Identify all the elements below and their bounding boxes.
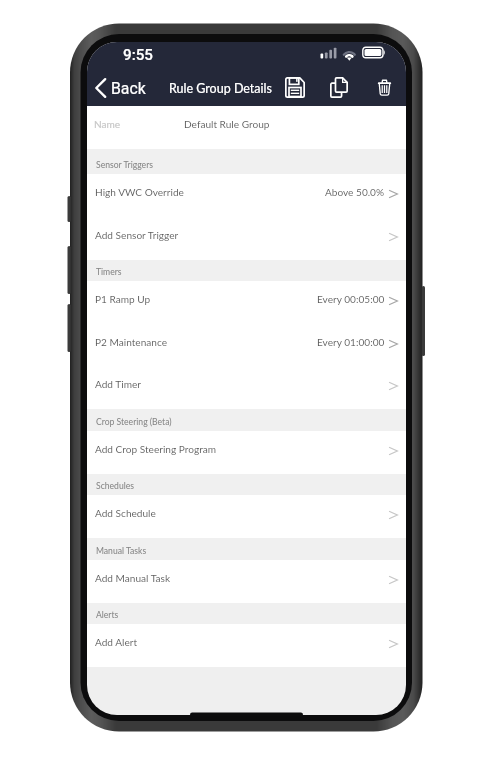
button[interactable]: Add Crop Steering Program <box>87 431 406 474</box>
staticText: Timers <box>96 267 122 277</box>
staticText: Every 00:05:00 <box>317 293 385 305</box>
button[interactable]: Save <box>280 72 310 102</box>
staticText: Above 50.0% <box>325 186 385 198</box>
button[interactable]: High VWC Override <box>87 174 406 217</box>
staticText: High VWC Override <box>95 186 325 198</box>
button[interactable]: Duplicate <box>324 72 354 102</box>
button[interactable]: Add Schedule <box>87 495 406 538</box>
staticText: Add Timer <box>95 378 385 390</box>
staticText: Add Alert <box>95 636 385 648</box>
staticText: P2 Maintenance <box>95 336 317 348</box>
staticText: Sensor Triggers <box>96 160 153 170</box>
button[interactable]: Add Manual Task <box>87 560 406 603</box>
staticText: Schedules <box>96 481 134 491</box>
button[interactable]: Delete <box>369 72 399 102</box>
staticText: P1 Ramp Up <box>95 293 317 305</box>
staticText: Rule Group Details <box>169 81 272 96</box>
button[interactable]: Back <box>91 75 150 101</box>
button[interactable]: P2 Maintenance <box>87 324 406 367</box>
staticText: Back <box>111 79 146 98</box>
staticText: Alerts <box>96 610 119 620</box>
staticText: Crop Steering (Beta) <box>96 417 172 427</box>
staticText: 9:55 <box>123 46 153 64</box>
button[interactable]: Add Timer <box>87 367 406 409</box>
staticText: Manual Tasks <box>96 546 147 556</box>
button[interactable]: Add Alert <box>87 624 406 667</box>
button[interactable]: Name <box>87 106 406 149</box>
staticText: Add Sensor Trigger <box>95 229 385 241</box>
staticText: Add Crop Steering Program <box>95 443 385 455</box>
staticText: Add Schedule <box>95 507 385 519</box>
staticText: Name <box>94 118 121 130</box>
button[interactable]: Add Sensor Trigger <box>87 217 406 260</box>
staticText: Add Manual Task <box>95 572 385 584</box>
staticText: Every 01:00:00 <box>317 336 385 348</box>
button[interactable]: P1 Ramp Up <box>87 281 406 324</box>
staticText: Default Rule Group <box>184 118 270 130</box>
